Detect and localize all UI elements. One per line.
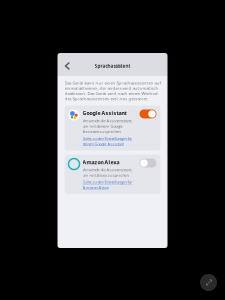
staticText: Das Gerät kann nur einen Sprachassistent…	[64, 80, 160, 101]
staticText: Verwende die Assistenztaste, um mit Alex…	[82, 167, 132, 178]
staticText: Verwende die Assistenztaste, um mit dein…	[82, 118, 132, 134]
button[interactable]: Back	[61, 56, 73, 73]
button[interactable]: Amazon Alexa	[64, 155, 160, 194]
button[interactable]: Google Assistant	[64, 105, 160, 150]
staticText: ⤢	[205, 278, 211, 286]
staticText: Sprachassistent	[94, 63, 130, 69]
button[interactable]: Resize window	[200, 274, 217, 291]
staticText: Amazon Alexa	[82, 159, 119, 166]
staticText: Google Assistant	[82, 109, 126, 116]
staticText: Gehe zu den Einstellungen für Amazon Ale…	[82, 179, 132, 190]
staticText: Gehe zu den Einstellungen für deinen Goo…	[82, 136, 132, 147]
